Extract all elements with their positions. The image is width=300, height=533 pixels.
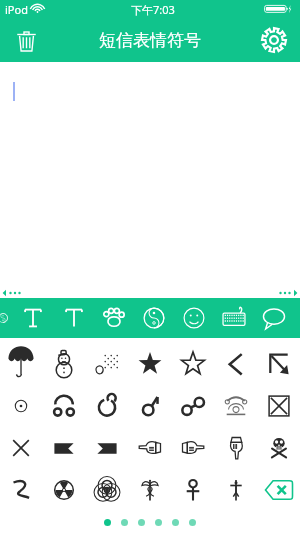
button[interactable]: Messages xyxy=(254,298,294,338)
staticText: iPod xyxy=(5,2,28,17)
button[interactable]: Corner arrow xyxy=(257,343,300,385)
button[interactable]: Page 3 xyxy=(138,519,145,526)
button[interactable]: Snowman xyxy=(42,343,85,385)
button[interactable]: Curl xyxy=(85,385,128,427)
button[interactable]: Hand right xyxy=(171,427,214,469)
button[interactable]: Biohazard xyxy=(85,469,128,511)
button[interactable]: Letter Z xyxy=(0,469,42,511)
button[interactable]: Page 4 xyxy=(155,519,162,526)
button[interactable]: Page 6 xyxy=(189,519,196,526)
button[interactable]: Page 1 xyxy=(104,519,111,526)
button[interactable]: Chain links xyxy=(171,385,214,427)
button[interactable]: Comet xyxy=(85,343,128,385)
button[interactable]: Dotted circle xyxy=(0,385,42,427)
button[interactable]: Caduceus xyxy=(128,469,171,511)
button[interactable]: Chevron left xyxy=(214,343,257,385)
button[interactable]: Animals xyxy=(94,298,134,338)
button[interactable]: Page 2 xyxy=(121,519,128,526)
staticText: 短信表情符号 xyxy=(99,30,201,51)
button[interactable]: Clear text xyxy=(9,23,43,57)
button[interactable]: Delete xyxy=(257,469,300,511)
button[interactable]: Mars xyxy=(128,385,171,427)
button[interactable]: Telephone xyxy=(214,385,257,427)
button[interactable]: Faces xyxy=(174,298,214,338)
button[interactable]: Keyboard xyxy=(214,298,254,338)
button[interactable]: Settings xyxy=(257,23,291,57)
button[interactable]: Boxed X xyxy=(257,385,300,427)
button[interactable]: Page 5 xyxy=(172,519,179,526)
staticText: 下午7:03 xyxy=(131,2,175,17)
button[interactable]: Fancy text xyxy=(53,298,94,338)
button[interactable]: Previous category xyxy=(0,298,12,338)
button[interactable]: Letter X xyxy=(0,427,42,469)
button[interactable]: Outline star xyxy=(171,343,214,385)
button[interactable]: Skull xyxy=(257,427,300,469)
button[interactable]: Hand down xyxy=(214,427,257,469)
button[interactable]: Flag left xyxy=(42,427,85,469)
button[interactable]: Radiation xyxy=(42,469,85,511)
button[interactable]: Ankh xyxy=(171,469,214,511)
button[interactable]: Crucifix xyxy=(214,469,257,511)
button[interactable]: Signs xyxy=(134,298,174,338)
button[interactable]: Flag right xyxy=(85,427,128,469)
button[interactable]: Plain text xyxy=(12,298,53,338)
button[interactable]: Umbrella xyxy=(0,343,42,385)
button[interactable]: Hand left xyxy=(128,427,171,469)
button[interactable]: Filled star xyxy=(128,343,171,385)
button[interactable]: Headphones xyxy=(42,385,85,427)
